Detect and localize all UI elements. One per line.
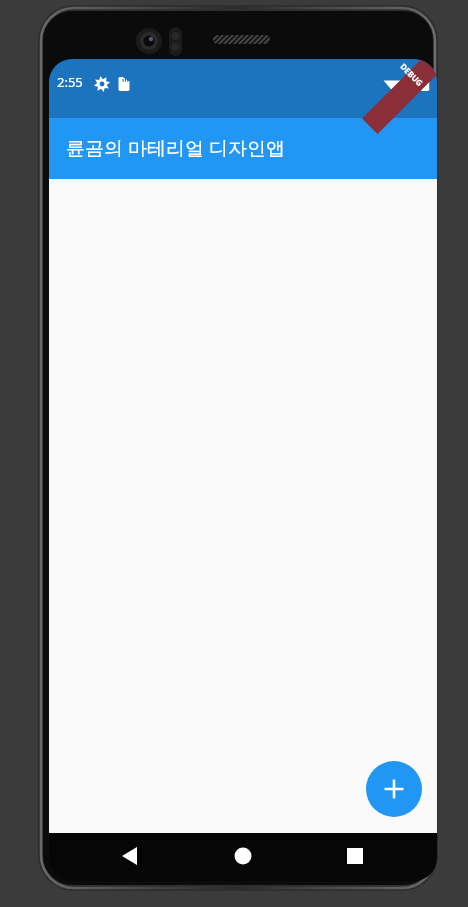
button[interactable]: 륜곰의 마테리얼 디자인앱 [49, 118, 437, 179]
staticText: DEBUG [398, 61, 426, 88]
button[interactable]: Add [366, 761, 422, 817]
staticText: 륜곰의 마테리얼 디자인앱 [66, 135, 285, 161]
button[interactable]: Back [100, 833, 160, 881]
button[interactable]: Recent apps [325, 833, 385, 881]
button[interactable]: Home [213, 833, 273, 881]
staticText: 2:55 [57, 73, 83, 91]
